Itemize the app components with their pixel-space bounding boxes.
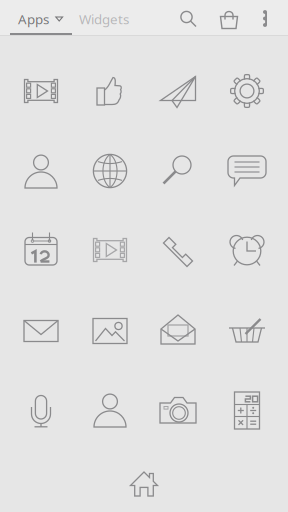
button[interactable]: Gallery [88,308,132,352]
button[interactable]: Social [88,69,132,113]
button[interactable]: Movies [88,228,132,272]
button[interactable]: Settings [225,69,269,113]
button[interactable]: Phone [156,228,200,272]
button[interactable]: Calendar [19,228,63,272]
button[interactable]: Inbox [156,308,200,352]
button[interactable]: Clock [225,228,269,272]
button[interactable]: Video player [19,69,63,113]
button[interactable]: People [88,388,132,432]
button[interactable]: Home [124,464,164,504]
button[interactable]: Browser [88,149,132,193]
staticText: Widgets [79,10,129,28]
button[interactable]: Send [156,69,200,113]
button[interactable]: Apps [10,1,72,36]
button[interactable]: Search [156,149,200,193]
button[interactable]: Voice recorder [19,388,63,432]
button[interactable]: Search [176,7,200,31]
staticText: Apps [18,10,49,28]
button[interactable]: Widgets [69,1,139,36]
button[interactable]: Calculator [225,388,269,432]
button[interactable]: Messages [225,149,269,193]
button[interactable]: Camera [156,388,200,432]
button[interactable]: Shopping [225,308,269,352]
button[interactable]: More options [253,7,277,31]
button[interactable]: Store [217,7,241,31]
button[interactable]: Contacts [19,149,63,193]
button[interactable]: Mail [19,308,63,352]
